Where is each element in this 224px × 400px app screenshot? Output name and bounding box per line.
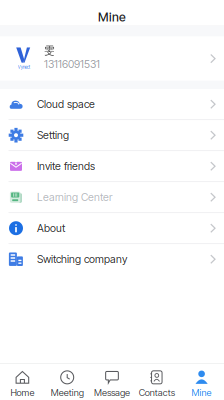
staticText: Invite friends [37,160,95,173]
button[interactable]: Vynect [0,37,224,81]
staticText: 雯 [44,44,55,57]
button[interactable]: About [0,213,224,244]
staticText: Switching company [37,253,127,266]
staticText: Mine [192,387,212,398]
staticText: Vynect [18,64,30,70]
staticText: 13116091531 [44,58,100,70]
staticText: Meeting [51,387,84,398]
staticText: About [37,222,65,235]
staticText: Home [10,387,34,398]
staticText: Message [94,387,130,398]
staticText: Contacts [139,387,175,398]
button[interactable]: Meeting [45,363,90,400]
button[interactable]: Home [0,363,45,400]
button[interactable]: Contacts [134,363,179,400]
button[interactable]: Cloud space [0,89,224,120]
button[interactable]: Invite friends [0,151,224,182]
button[interactable]: Message [90,363,134,400]
button[interactable]: Switching company [0,244,224,275]
staticText: Learning Center [37,191,112,204]
staticText: Setting [37,129,69,142]
button[interactable]: Mine [179,363,224,400]
staticText: Cloud space [37,98,95,111]
staticText: Mine [98,10,126,24]
button[interactable]: Learning Center [0,182,224,213]
button[interactable]: Setting [0,120,224,151]
